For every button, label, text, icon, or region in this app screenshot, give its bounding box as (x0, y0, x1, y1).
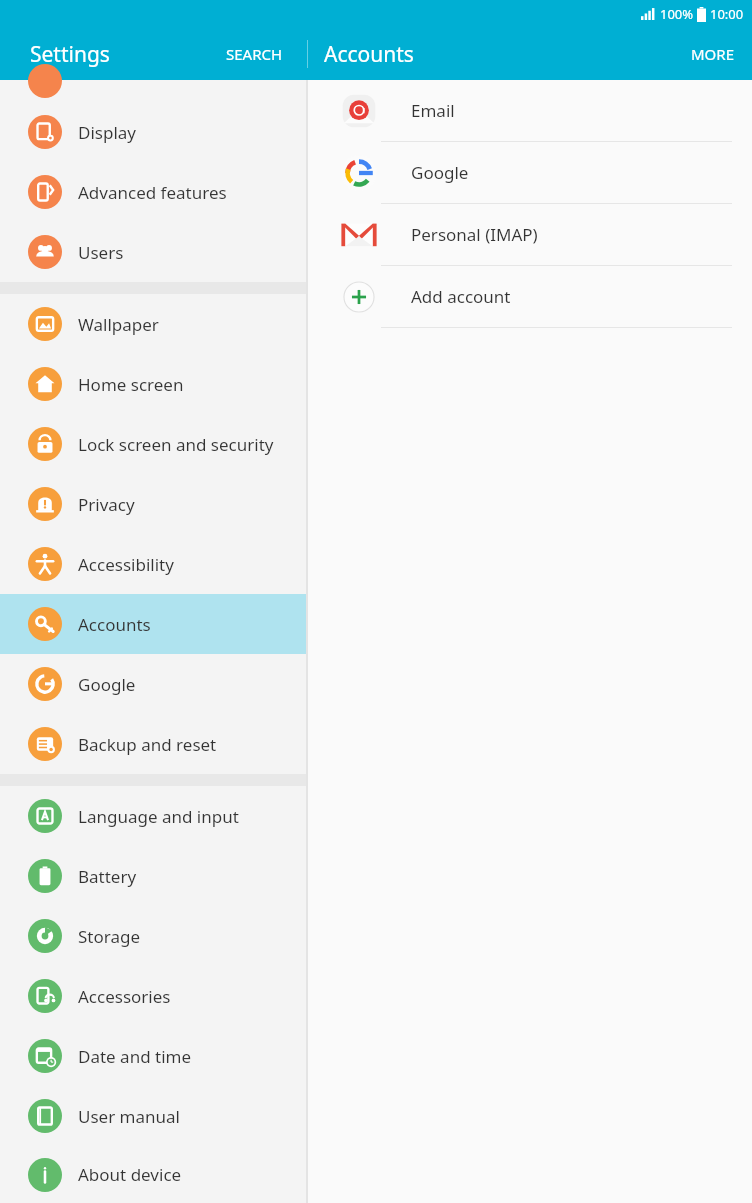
staticText: Lock screen and security (78, 433, 274, 456)
staticText: About device (78, 1163, 182, 1186)
staticText: Wallpaper (78, 313, 159, 336)
staticText: 10:00 (710, 5, 744, 23)
staticText: Advanced features (78, 181, 227, 204)
button[interactable]: Add account (308, 266, 752, 328)
button[interactable] (0, 80, 306, 102)
button[interactable]: SEARCH (212, 28, 297, 80)
staticText: Language and input (78, 805, 239, 828)
button[interactable]: Battery (0, 846, 306, 906)
button[interactable]: Google (0, 654, 306, 714)
button[interactable]: Accessories (0, 966, 306, 1026)
button[interactable]: Storage (0, 906, 306, 966)
button[interactable]: MORE (673, 28, 752, 80)
button[interactable]: Email (308, 80, 752, 142)
staticText: MORE (691, 44, 734, 64)
button[interactable]: Lock screen and security (0, 414, 306, 474)
button[interactable]: Google (308, 142, 752, 204)
button[interactable]: User manual (0, 1086, 306, 1146)
staticText: Storage (78, 925, 141, 948)
button[interactable]: Backup and reset (0, 714, 306, 774)
staticText: Accessibility (78, 553, 174, 576)
button[interactable]: Users (0, 222, 306, 282)
staticText: 100% (660, 5, 694, 23)
button[interactable]: Home screen (0, 354, 306, 414)
staticText: Google (78, 673, 136, 696)
button[interactable]: Advanced features (0, 162, 306, 222)
staticText: Battery (78, 865, 137, 888)
button[interactable]: Personal (IMAP) (308, 204, 752, 266)
staticText: Privacy (78, 493, 135, 516)
button[interactable]: About device (0, 1146, 306, 1203)
staticText: Accounts (324, 40, 414, 69)
staticText: User manual (78, 1105, 180, 1128)
staticText: Backup and reset (78, 733, 217, 756)
button[interactable]: Accounts (324, 28, 414, 80)
staticText: Home screen (78, 373, 184, 396)
staticText: SEARCH (226, 44, 283, 64)
staticText: Add account (411, 285, 511, 308)
button[interactable]: Privacy (0, 474, 306, 534)
staticText: Display (78, 121, 136, 144)
staticText: Settings (30, 40, 110, 69)
button[interactable]: Display (0, 102, 306, 162)
button[interactable]: Accounts (0, 594, 306, 654)
staticText: Users (78, 241, 124, 264)
staticText: Email (411, 99, 455, 122)
button[interactable]: Wallpaper (0, 294, 306, 354)
button[interactable]: Accessibility (0, 534, 306, 594)
button[interactable]: Language and input (0, 786, 306, 846)
staticText: Google (411, 161, 469, 184)
button[interactable]: Settings (30, 28, 110, 80)
button[interactable]: Date and time (0, 1026, 306, 1086)
staticText: Accessories (78, 985, 171, 1008)
staticText: Accounts (78, 613, 151, 636)
staticText: Date and time (78, 1045, 192, 1068)
staticText: Personal (IMAP) (411, 223, 538, 246)
